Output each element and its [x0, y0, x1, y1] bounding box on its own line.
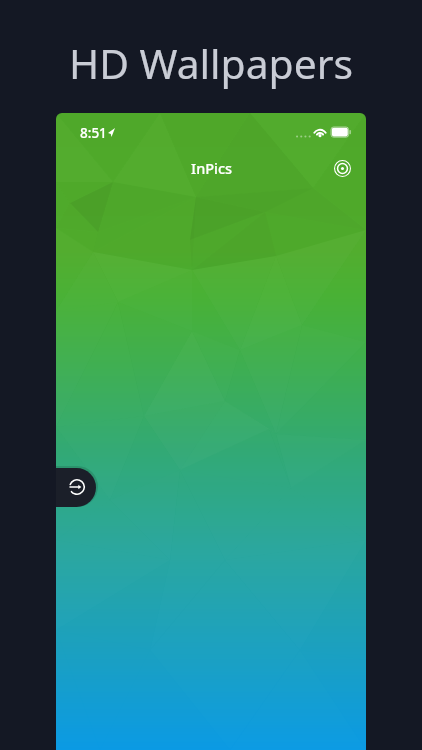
- staticText: InPics: [191, 158, 233, 178]
- staticText: HD Wallpapers: [0, 35, 422, 91]
- button[interactable]: Target: [323, 149, 361, 187]
- staticText: 8:51: [80, 124, 107, 142]
- button[interactable]: Sign in: [56, 468, 96, 507]
